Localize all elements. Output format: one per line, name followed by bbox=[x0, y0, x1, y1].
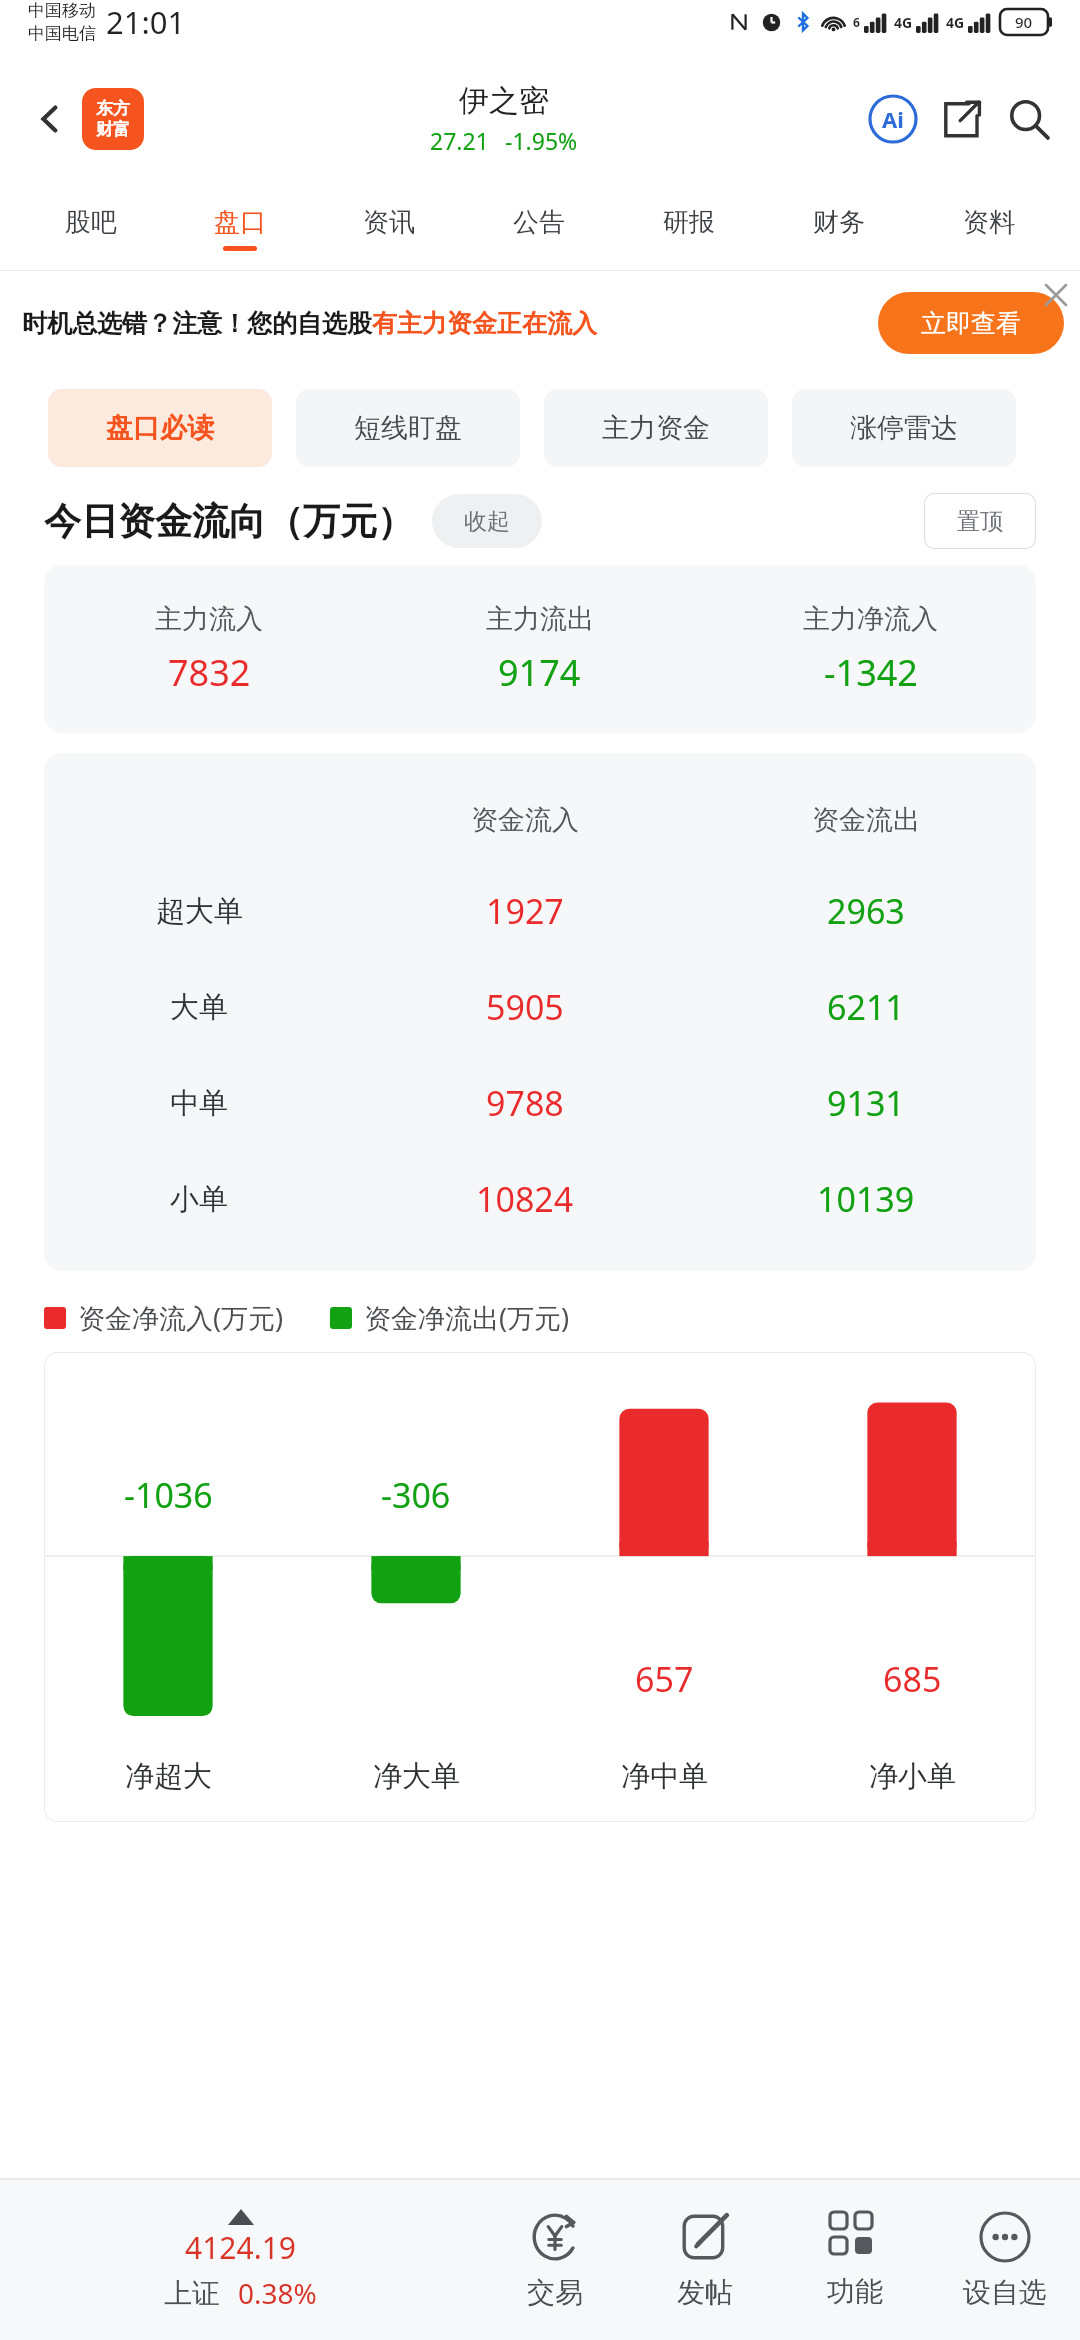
staticText: 资料 bbox=[963, 206, 1015, 239]
button[interactable]: 设自选 bbox=[930, 2180, 1080, 2340]
button[interactable]: 盘口 bbox=[165, 186, 314, 270]
staticText: 收起 bbox=[464, 507, 510, 536]
staticText: 9788 bbox=[486, 1080, 564, 1126]
staticText: 27.21 bbox=[430, 125, 489, 156]
staticText: 时机总选错？注意！您的自选股 bbox=[22, 308, 372, 339]
staticText: 东方 bbox=[96, 98, 130, 119]
staticText: -1036 bbox=[124, 1472, 213, 1518]
button[interactable]: 置顶 bbox=[924, 493, 1036, 549]
staticText: 交易 bbox=[527, 2275, 583, 2310]
staticText: 685 bbox=[883, 1656, 942, 1702]
staticText: 盘口 bbox=[214, 206, 266, 239]
button[interactable]: 资讯 bbox=[314, 186, 464, 270]
button[interactable]: 主力流入 bbox=[44, 565, 1036, 733]
staticText: 净中单 bbox=[621, 1758, 708, 1795]
button[interactable]: 收起 bbox=[432, 494, 542, 548]
staticText: 今日资金流向（万元） bbox=[44, 498, 414, 545]
button[interactable]: 立即查看 bbox=[878, 292, 1064, 354]
button[interactable]: 交易 bbox=[480, 2180, 630, 2340]
staticText: 超大单 bbox=[156, 893, 243, 930]
staticText: 研报 bbox=[663, 206, 715, 239]
staticText: 财富 bbox=[96, 119, 130, 140]
staticText: 657 bbox=[635, 1656, 694, 1702]
staticText: 6211 bbox=[827, 984, 905, 1030]
staticText: 0.38% bbox=[238, 2274, 317, 2312]
staticText: 净小单 bbox=[869, 1758, 956, 1795]
button[interactable]: 财务 bbox=[764, 186, 914, 270]
button[interactable]: 股吧 bbox=[16, 186, 165, 270]
button[interactable]: 发帖 bbox=[630, 2180, 780, 2340]
staticText: 7832 bbox=[168, 648, 251, 697]
staticText: 资金流入 bbox=[471, 803, 579, 837]
staticText: 涨停雷达 bbox=[850, 411, 958, 445]
staticText: 上证 bbox=[164, 2276, 220, 2311]
staticText: 伊之密 bbox=[459, 82, 549, 120]
staticText: 中单 bbox=[170, 1085, 228, 1122]
button[interactable]: 资料 bbox=[914, 186, 1064, 270]
staticText: 资讯 bbox=[363, 206, 415, 239]
button[interactable]: Search bbox=[1000, 90, 1058, 148]
staticText: -306 bbox=[381, 1472, 451, 1518]
staticText: 股吧 bbox=[65, 206, 117, 239]
staticText: 盘口必读 bbox=[106, 411, 214, 445]
staticText: 21:01 bbox=[106, 1, 186, 43]
staticText: 公告 bbox=[513, 206, 565, 239]
staticText: 4G bbox=[946, 13, 965, 32]
staticText: 小单 bbox=[170, 1181, 228, 1218]
staticText: 中国电信 bbox=[28, 23, 96, 44]
staticText: 立即查看 bbox=[921, 308, 1021, 339]
staticText: -1342 bbox=[824, 648, 918, 697]
staticText: 发帖 bbox=[677, 2275, 733, 2310]
staticText: 财务 bbox=[813, 206, 865, 239]
button[interactable]: 资金流入 bbox=[44, 753, 1036, 1271]
staticText: 主力净流入 bbox=[803, 602, 938, 636]
button[interactable]: 4124.19 bbox=[0, 2180, 480, 2340]
staticText: 10139 bbox=[817, 1176, 915, 1222]
staticText: 设自选 bbox=[963, 2275, 1047, 2310]
staticText: 置顶 bbox=[957, 507, 1003, 536]
button[interactable]: Close bbox=[1032, 271, 1080, 319]
staticText: 5905 bbox=[486, 984, 564, 1030]
button[interactable]: 涨停雷达 bbox=[792, 389, 1016, 467]
staticText: 短线盯盘 bbox=[354, 411, 462, 445]
staticText: -1.95% bbox=[505, 125, 578, 156]
button[interactable]: Back bbox=[22, 91, 78, 147]
button[interactable]: 公告 bbox=[464, 186, 614, 270]
staticText: 资金流出 bbox=[812, 803, 920, 837]
staticText: 功能 bbox=[827, 2274, 883, 2309]
staticText: 资金净流入(万元) bbox=[78, 1299, 284, 1336]
staticText: 资金净流出(万元) bbox=[364, 1299, 570, 1336]
button[interactable]: Share bbox=[932, 90, 990, 148]
staticText: 大单 bbox=[170, 989, 228, 1026]
staticText: 主力资金 bbox=[602, 411, 710, 445]
staticText: 净超大 bbox=[125, 1758, 212, 1795]
button[interactable]: 主力资金 bbox=[544, 389, 768, 467]
staticText: 有主力资金正在流入 bbox=[372, 308, 597, 339]
staticText: 6 bbox=[853, 14, 860, 30]
staticText: 9131 bbox=[827, 1080, 905, 1126]
staticText: 4G bbox=[894, 13, 913, 32]
button[interactable]: 功能 bbox=[780, 2180, 930, 2340]
staticText: 2963 bbox=[827, 888, 905, 934]
staticText: Ai bbox=[882, 104, 904, 134]
button[interactable]: East Money bbox=[82, 88, 144, 150]
button[interactable]: 短线盯盘 bbox=[296, 389, 520, 467]
staticText: 中国移动 bbox=[28, 0, 96, 21]
button[interactable]: 研报 bbox=[614, 186, 764, 270]
button[interactable]: AI bbox=[864, 90, 922, 148]
staticText: 90 bbox=[1015, 12, 1033, 32]
staticText: 净大单 bbox=[373, 1758, 460, 1795]
staticText: 4124.19 bbox=[185, 2227, 296, 2268]
button[interactable]: -1036 bbox=[44, 1352, 1036, 1822]
staticText: 主力流出 bbox=[486, 602, 594, 636]
staticText: 10824 bbox=[476, 1176, 574, 1222]
staticText: 1927 bbox=[486, 888, 564, 934]
staticText: 9174 bbox=[498, 648, 581, 697]
staticText: 主力流入 bbox=[155, 602, 263, 636]
button[interactable]: 盘口必读 bbox=[48, 389, 272, 467]
